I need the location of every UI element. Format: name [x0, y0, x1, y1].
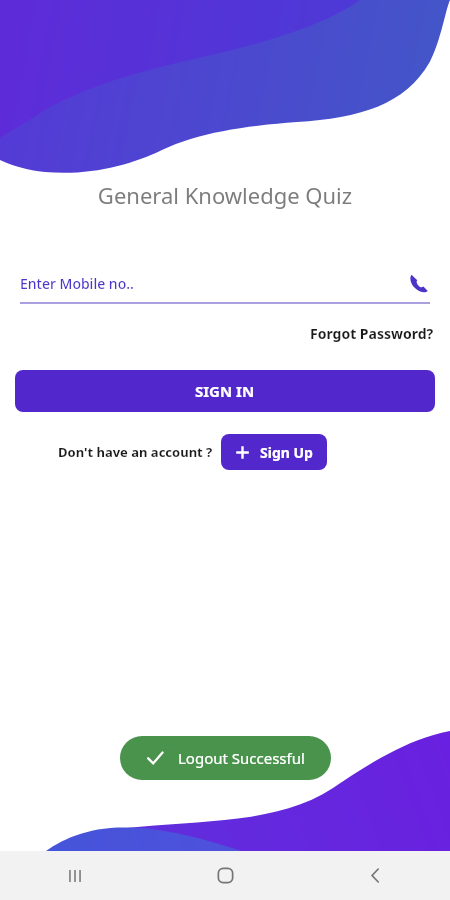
button[interactable]: SIGN IN — [15, 370, 435, 412]
button[interactable]: Home — [150, 851, 300, 900]
staticText: Enter Mobile no.. — [20, 274, 134, 293]
staticText: Logout Successful — [178, 748, 305, 768]
button[interactable]: Forgot Password? — [310, 324, 450, 343]
staticText: General Knowledge Quiz — [0, 180, 450, 210]
staticText: Sign Up — [260, 443, 313, 462]
staticText: SIGN IN — [195, 381, 255, 401]
other: Phone — [408, 272, 430, 294]
button[interactable]: Back — [300, 851, 450, 900]
button[interactable]: Recent apps — [0, 851, 150, 900]
button[interactable]: Sign Up — [221, 434, 327, 470]
button[interactable]: Enter Mobile no.. — [20, 272, 430, 304]
staticText: Don't have an account ? — [58, 443, 213, 461]
